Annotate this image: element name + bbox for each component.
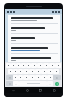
button[interactable]: Key — [29, 75, 35, 80]
button[interactable]: Delete — [53, 75, 61, 80]
button[interactable]: Key — [16, 63, 21, 68]
button[interactable]: Comma — [13, 81, 19, 86]
button[interactable]: Key — [47, 75, 53, 80]
button[interactable]: Key — [6, 63, 11, 68]
button[interactable] — [8, 55, 60, 62]
button[interactable]: Key — [23, 75, 29, 80]
button[interactable] — [8, 45, 60, 55]
button[interactable]: Key — [43, 63, 49, 68]
button[interactable]: Key — [55, 63, 61, 68]
button[interactable] — [8, 35, 60, 45]
button[interactable]: Key — [31, 63, 37, 68]
button[interactable]: Key — [13, 69, 18, 74]
button[interactable]: Key — [41, 75, 47, 80]
button[interactable]: Key — [49, 63, 55, 68]
button[interactable]: Key — [21, 63, 26, 68]
button[interactable]: Key — [47, 69, 53, 74]
button[interactable]: Switch keyboard — [49, 87, 59, 93]
button[interactable]: Key — [26, 63, 31, 68]
button[interactable]: Key — [37, 63, 43, 68]
button[interactable]: Key — [11, 63, 16, 68]
button[interactable]: Back — [8, 87, 18, 93]
button[interactable]: Key — [29, 69, 35, 74]
button[interactable]: Period — [47, 81, 53, 86]
button[interactable]: Recents — [35, 87, 45, 93]
button[interactable]: Key — [41, 69, 47, 74]
button[interactable]: Space — [19, 81, 47, 86]
button[interactable]: Shift — [6, 75, 13, 80]
button[interactable]: Numbers — [6, 81, 13, 86]
button[interactable]: Key — [35, 75, 41, 80]
button[interactable]: Key — [18, 75, 23, 80]
button[interactable]: Key — [18, 69, 23, 74]
button[interactable]: Send — [53, 81, 61, 86]
button[interactable]: Key — [35, 69, 41, 74]
button[interactable]: Key — [23, 69, 29, 74]
button[interactable]: Key — [13, 75, 18, 80]
button[interactable]: Home — [22, 87, 32, 93]
button[interactable]: Key — [8, 69, 13, 74]
button[interactable] — [8, 25, 60, 35]
button[interactable]: Key — [53, 69, 59, 74]
button[interactable] — [8, 15, 60, 25]
